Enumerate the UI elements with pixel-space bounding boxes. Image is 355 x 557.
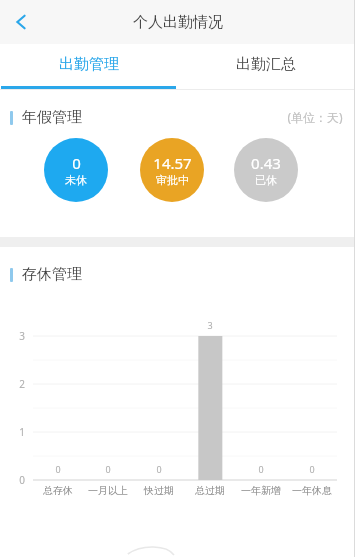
- staticText: 快过期: [144, 484, 174, 497]
- staticText: 未休: [65, 173, 87, 187]
- staticText: 0: [105, 463, 111, 475]
- staticText: 一年新增: [241, 484, 281, 497]
- staticText: 0: [19, 473, 25, 487]
- staticText: (单位：天): [287, 109, 343, 125]
- button[interactable]: 0: [44, 138, 108, 202]
- staticText: 3: [207, 319, 213, 331]
- staticText: 0: [309, 463, 315, 475]
- staticText: 0: [156, 463, 162, 475]
- staticText: 存休管理: [22, 265, 82, 284]
- staticText: 0: [55, 463, 61, 475]
- button[interactable]: 0.43: [234, 138, 298, 202]
- staticText: 出勤管理: [59, 55, 119, 74]
- staticText: 年假管理: [22, 108, 82, 127]
- staticText: 审批中: [156, 173, 189, 187]
- button[interactable]: Back: [0, 1, 42, 43]
- staticText: 0: [258, 463, 264, 475]
- staticText: 总过期: [195, 484, 225, 497]
- staticText: 已休: [255, 173, 277, 187]
- staticText: 14.57: [153, 153, 192, 173]
- staticText: 个人出勤情况: [133, 13, 223, 32]
- staticText: 2: [19, 377, 25, 391]
- staticText: 1: [19, 425, 25, 439]
- button[interactable]: 出勤管理: [0, 44, 177, 89]
- staticText: 0.43: [251, 153, 281, 173]
- button[interactable]: 14.57: [140, 138, 204, 202]
- staticText: 3: [19, 329, 25, 343]
- staticText: 一月以上: [88, 484, 128, 497]
- button[interactable]: 出勤汇总: [177, 44, 355, 89]
- staticText: 出勤汇总: [236, 55, 296, 74]
- staticText: 0: [72, 153, 81, 173]
- staticText: 一年休息: [292, 484, 332, 497]
- staticText: 总存休: [43, 484, 73, 497]
